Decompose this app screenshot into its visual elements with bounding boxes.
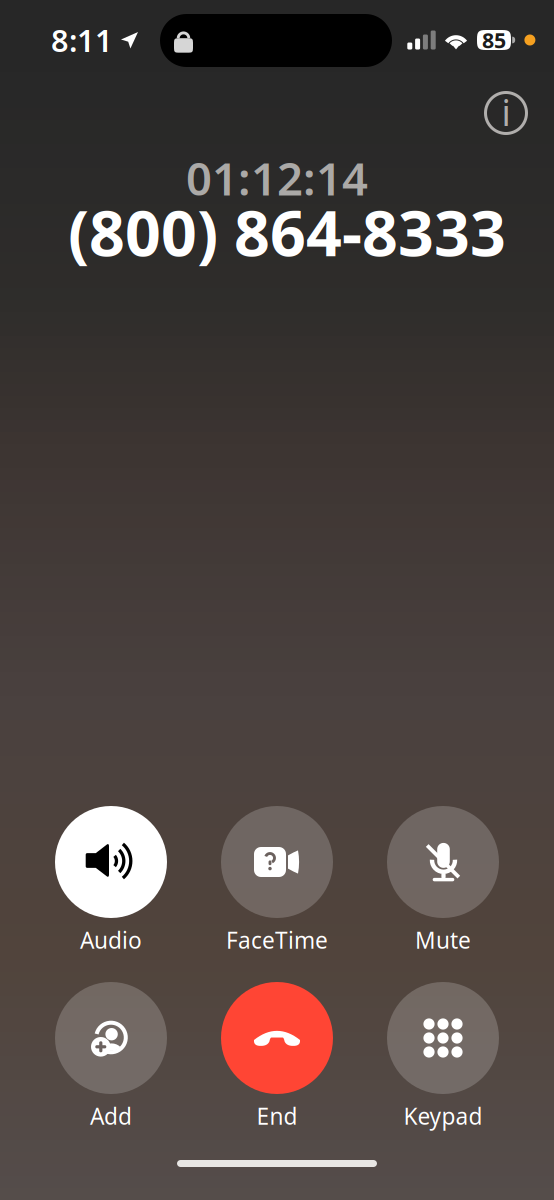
button[interactable]: Add: [28, 982, 194, 1133]
button[interactable]: Mute: [360, 806, 526, 957]
staticText: 01:12:14: [186, 148, 368, 208]
button[interactable]: Keypad: [360, 982, 526, 1133]
staticText: 85: [482, 26, 506, 54]
staticText: Keypad: [403, 1101, 482, 1131]
button[interactable]: Call details: [479, 86, 533, 140]
staticText: Add: [90, 1101, 132, 1131]
staticText: Mute: [415, 925, 471, 955]
staticText: (800) 864-8333: [68, 190, 506, 274]
button[interactable]: End: [194, 982, 360, 1133]
staticText: 8:11: [51, 20, 113, 60]
button[interactable]: FaceTime: [194, 806, 360, 957]
button[interactable]: Audio: [28, 806, 194, 957]
staticText: i: [501, 88, 510, 136]
staticText: Audio: [80, 925, 142, 955]
staticText: FaceTime: [226, 925, 328, 955]
staticText: End: [256, 1101, 297, 1131]
